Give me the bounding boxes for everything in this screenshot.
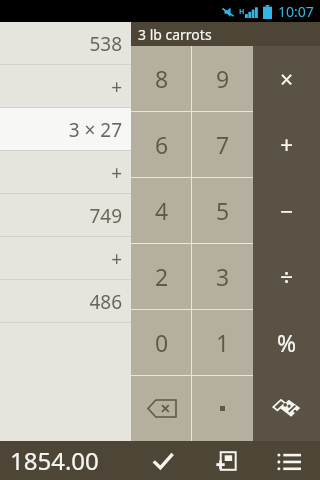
button[interactable]: 1 <box>192 310 253 375</box>
staticText: 3 × 27 <box>68 117 122 143</box>
button[interactable]: Accept <box>131 441 194 480</box>
button[interactable]: 8 <box>131 46 192 111</box>
button[interactable]: 9 <box>192 46 253 111</box>
button[interactable]: − <box>253 177 320 243</box>
button[interactable]: ÷ <box>253 243 320 309</box>
button[interactable]: 5 <box>192 178 253 243</box>
button[interactable]: 749 <box>0 194 131 237</box>
staticText: H <box>239 7 245 17</box>
button[interactable]: % <box>253 309 320 375</box>
button[interactable]: + <box>253 111 320 177</box>
button[interactable]: 3 <box>192 244 253 309</box>
staticText: 1 <box>216 327 230 358</box>
button[interactable]: 7 <box>192 112 253 177</box>
button[interactable]: + <box>0 151 131 194</box>
button[interactable]: 6 <box>131 112 192 177</box>
button[interactable]: Add item <box>194 441 257 480</box>
button[interactable]: 2 <box>131 244 192 309</box>
staticText: + <box>280 129 294 160</box>
staticText: + <box>111 74 122 100</box>
staticText: 8 <box>155 63 169 94</box>
button[interactable]: Discount <box>253 375 320 441</box>
staticText: 0 <box>155 327 169 358</box>
button[interactable]: + <box>0 237 131 280</box>
button[interactable]: + <box>0 65 131 108</box>
staticText: 486 <box>89 289 122 315</box>
button[interactable]: 0 <box>131 310 192 375</box>
button[interactable]: × <box>253 46 320 111</box>
staticText: 6 <box>155 129 169 160</box>
staticText: 2 <box>155 261 169 292</box>
button[interactable]: 4 <box>131 178 192 243</box>
staticText: 7 <box>216 129 230 160</box>
staticText: 749 <box>89 203 122 229</box>
staticText: % <box>277 327 297 358</box>
button[interactable]: 486 <box>0 280 131 323</box>
staticText: 5 <box>216 195 230 226</box>
staticText: + <box>111 160 122 186</box>
staticText: + <box>111 246 122 272</box>
staticText: − <box>280 195 294 226</box>
button[interactable]: 3 × 27 <box>0 108 131 151</box>
button[interactable]: Backspace <box>131 376 192 441</box>
button[interactable]: 3 lb carrots <box>131 22 320 46</box>
staticText: 538 <box>89 31 122 57</box>
button[interactable]: 538 <box>0 22 131 65</box>
button[interactable]: List <box>257 441 320 480</box>
staticText: 10:07 <box>278 2 314 21</box>
staticText: 1854.00 <box>10 444 99 477</box>
staticText: 9 <box>216 63 230 94</box>
staticText: 4 <box>155 195 169 226</box>
staticText: ÷ <box>280 261 294 292</box>
staticText: 3 <box>216 261 230 292</box>
staticText: × <box>280 63 294 94</box>
staticText: 3 lb carrots <box>138 25 212 44</box>
button[interactable] <box>192 376 253 441</box>
button[interactable]: 1854.00 <box>0 441 131 480</box>
